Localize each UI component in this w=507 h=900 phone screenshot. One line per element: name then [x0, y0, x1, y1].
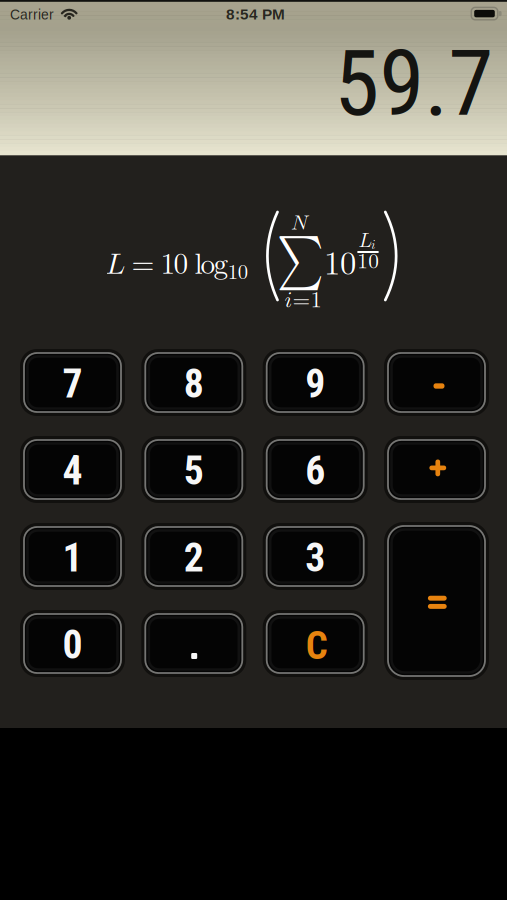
button[interactable]: Minus	[388, 353, 485, 412]
button[interactable]: 9	[267, 353, 364, 412]
button[interactable]: C	[267, 614, 364, 673]
staticText: 𝐿	[359, 231, 373, 251]
staticText: 59.7	[334, 30, 493, 137]
staticText: 4	[62, 447, 82, 494]
staticText: 7	[62, 360, 82, 407]
button[interactable]: 3	[267, 527, 364, 586]
button[interactable]: 4	[24, 440, 121, 499]
staticText: 2	[184, 534, 204, 581]
button[interactable]: 0	[24, 614, 121, 673]
staticText: 8:54 PM	[226, 6, 285, 23]
button[interactable]: 7	[24, 353, 121, 412]
staticText: 9	[305, 360, 325, 407]
staticText: 8	[184, 360, 204, 407]
button[interactable]: Decimal point	[145, 614, 242, 673]
staticText: 6	[305, 447, 325, 494]
staticText: C	[306, 623, 328, 668]
staticText: 𝑖=1	[284, 289, 321, 312]
staticText: ∑	[272, 233, 329, 287]
staticText: 10	[228, 262, 248, 283]
staticText: 𝑁	[291, 213, 308, 234]
staticText: Carrier	[10, 7, 54, 22]
staticText: 10	[357, 251, 379, 272]
staticText: 𝑖	[371, 238, 376, 251]
staticText: 0	[62, 621, 82, 668]
staticText: 𝐿 = 10 log	[105, 250, 228, 279]
button[interactable]: 8	[145, 353, 242, 412]
button[interactable]: Equals	[388, 526, 485, 676]
staticText: 1	[62, 534, 82, 581]
button[interactable]: 5	[145, 440, 242, 499]
staticText: 3	[305, 534, 325, 581]
button[interactable]: 6	[267, 440, 364, 499]
button[interactable]: 2	[145, 527, 242, 586]
button[interactable]: 1	[24, 527, 121, 586]
staticText: 5	[184, 447, 204, 494]
button[interactable]: Plus	[388, 440, 485, 499]
staticText: 10	[324, 248, 356, 281]
